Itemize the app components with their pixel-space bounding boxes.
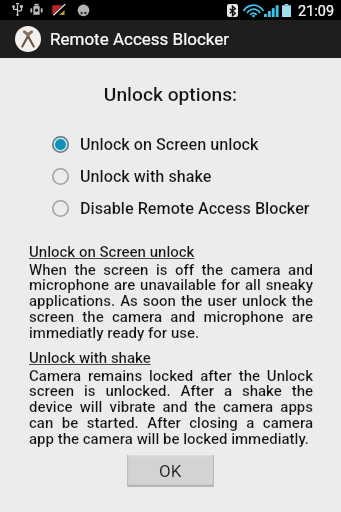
staticText: When the screen is off the camera and mi… [29, 261, 313, 342]
button[interactable]: Disable Remote Access Blocker [0, 192, 341, 224]
staticText: 21:09 [298, 3, 335, 20]
button[interactable]: Unlock with shake [0, 160, 341, 192]
staticText: Unlock with shake [80, 167, 212, 186]
staticText: Unlock options: [0, 83, 341, 106]
staticText: Camera remains locked after the Unlock s… [29, 367, 313, 448]
staticText: Unlock on Screen unlock [80, 135, 259, 154]
button[interactable]: OK [127, 455, 214, 487]
button[interactable]: Unlock on Screen unlock [0, 128, 341, 160]
staticText: OK [159, 461, 182, 481]
staticText: Unlock on Screen unlock [29, 243, 195, 261]
staticText: Disable Remote Access Blocker [80, 199, 310, 218]
button[interactable]: App icon [0, 20, 341, 58]
staticText: Remote Access Blocker [50, 29, 230, 49]
staticText: Unlock with shake [29, 349, 151, 367]
